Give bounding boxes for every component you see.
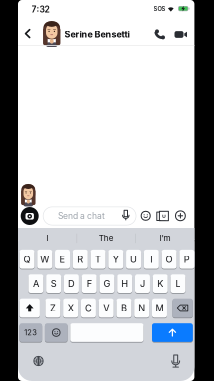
staticText: S <box>51 278 57 289</box>
button[interactable]: Space <box>70 323 143 342</box>
button[interactable]: Stickers <box>140 210 151 221</box>
staticText: L <box>175 278 180 289</box>
staticText: I <box>46 233 48 243</box>
button[interactable]: Call <box>153 27 167 41</box>
staticText: 123 <box>24 328 37 337</box>
button[interactable]: H <box>117 274 132 293</box>
button[interactable]: More <box>174 210 186 222</box>
button[interactable]: Dictation <box>169 353 183 369</box>
button[interactable]: Send a chat <box>42 206 138 226</box>
staticText: E <box>59 254 65 265</box>
button[interactable]: Back <box>23 28 33 40</box>
staticText: N <box>138 302 145 314</box>
staticText: D <box>68 278 75 289</box>
button[interactable]: M <box>152 299 167 317</box>
staticText: Z <box>50 302 56 314</box>
button[interactable]: Shift <box>19 299 40 317</box>
staticText: T <box>95 254 101 265</box>
staticText: G <box>103 278 110 289</box>
staticText: U <box>130 254 137 265</box>
button[interactable]: X <box>63 299 78 317</box>
button[interactable]: E <box>55 250 70 269</box>
staticText: F <box>87 278 92 289</box>
staticText: I <box>150 254 152 265</box>
button[interactable]: P <box>179 250 194 269</box>
button[interactable]: Delete <box>172 299 193 317</box>
staticText: W <box>40 254 49 265</box>
button[interactable]: Send <box>152 323 193 342</box>
staticText: SOS <box>153 5 165 12</box>
button[interactable]: F <box>82 274 97 293</box>
button[interactable]: R <box>73 250 88 269</box>
button[interactable]: Emoji <box>45 323 68 342</box>
button[interactable]: B <box>116 299 131 317</box>
button[interactable]: L <box>170 274 185 293</box>
button[interactable]: Z <box>45 299 60 317</box>
button[interactable]: N <box>134 299 149 317</box>
button[interactable]: I'm <box>137 230 193 246</box>
staticText: R <box>77 254 83 265</box>
staticText: J <box>140 278 145 289</box>
button[interactable]: T <box>90 250 105 269</box>
button[interactable]: W <box>37 250 52 269</box>
staticText: H <box>121 278 128 289</box>
button[interactable]: I <box>19 230 75 246</box>
staticText: X <box>68 302 74 314</box>
staticText: The <box>99 233 114 243</box>
button[interactable]: Numbers <box>19 323 42 342</box>
staticText: C <box>85 302 92 314</box>
staticText: K <box>157 278 163 289</box>
button[interactable]: C <box>81 299 96 317</box>
staticText: B <box>121 302 127 314</box>
button[interactable]: The <box>78 230 134 246</box>
button[interactable]: D <box>64 274 79 293</box>
button[interactable]: Next keyboard <box>31 354 45 368</box>
button[interactable]: O <box>162 250 177 269</box>
staticText: P <box>184 254 190 265</box>
button[interactable]: U <box>126 250 141 269</box>
staticText: Q <box>23 254 30 265</box>
staticText: 7:32 <box>31 4 49 14</box>
staticText: M <box>155 302 163 314</box>
staticText: I'm <box>159 233 170 243</box>
button[interactable]: Q <box>19 250 34 269</box>
button[interactable]: A <box>28 274 43 293</box>
staticText: O <box>166 254 173 265</box>
button[interactable]: Camera <box>21 207 39 225</box>
button[interactable]: K <box>153 274 168 293</box>
button[interactable]: Video call <box>174 27 189 41</box>
staticText: Serine Bensetti <box>64 29 129 40</box>
button[interactable]: I <box>144 250 159 269</box>
staticText: A <box>33 278 39 289</box>
button[interactable]: Bitmoji stickers <box>156 210 169 222</box>
button[interactable]: G <box>99 274 114 293</box>
staticText: Y <box>113 254 119 265</box>
button[interactable]: J <box>135 274 150 293</box>
staticText: Send a chat <box>58 211 105 221</box>
button[interactable]: S <box>46 274 61 293</box>
staticText: V <box>103 302 109 314</box>
button[interactable]: Y <box>108 250 123 269</box>
button[interactable]: V <box>99 299 114 317</box>
